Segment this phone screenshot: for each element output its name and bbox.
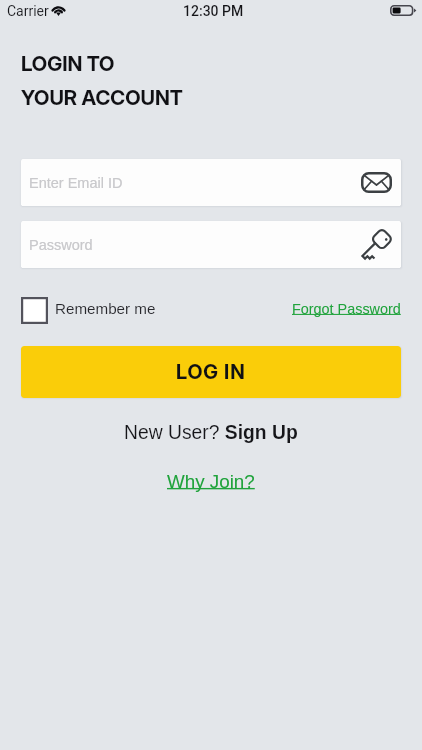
staticText: Why Join? (167, 471, 255, 492)
button[interactable]: Enter Email ID (21, 159, 401, 206)
staticText: Forgot Password (292, 301, 401, 317)
staticText: Remember me (55, 300, 156, 317)
staticText: YOUR ACCOUNT (21, 85, 183, 110)
button[interactable]: Remember me (21, 297, 156, 324)
button[interactable]: LOG IN (21, 346, 401, 398)
staticText: LOGIN TO (21, 51, 115, 76)
button[interactable]: Password (21, 221, 401, 268)
staticText: Carrier (7, 3, 49, 19)
other: Email (361, 172, 392, 193)
staticText: Password (29, 237, 93, 253)
staticText: New User? Sign Up (124, 422, 298, 444)
staticText: LOG IN (176, 360, 246, 384)
other: Password (357, 227, 394, 264)
staticText: 12:30 PM (183, 3, 244, 19)
button[interactable]: Forgot Password (292, 301, 401, 317)
button[interactable]: Why Join? (167, 471, 255, 492)
staticText: Enter Email ID (29, 175, 123, 191)
